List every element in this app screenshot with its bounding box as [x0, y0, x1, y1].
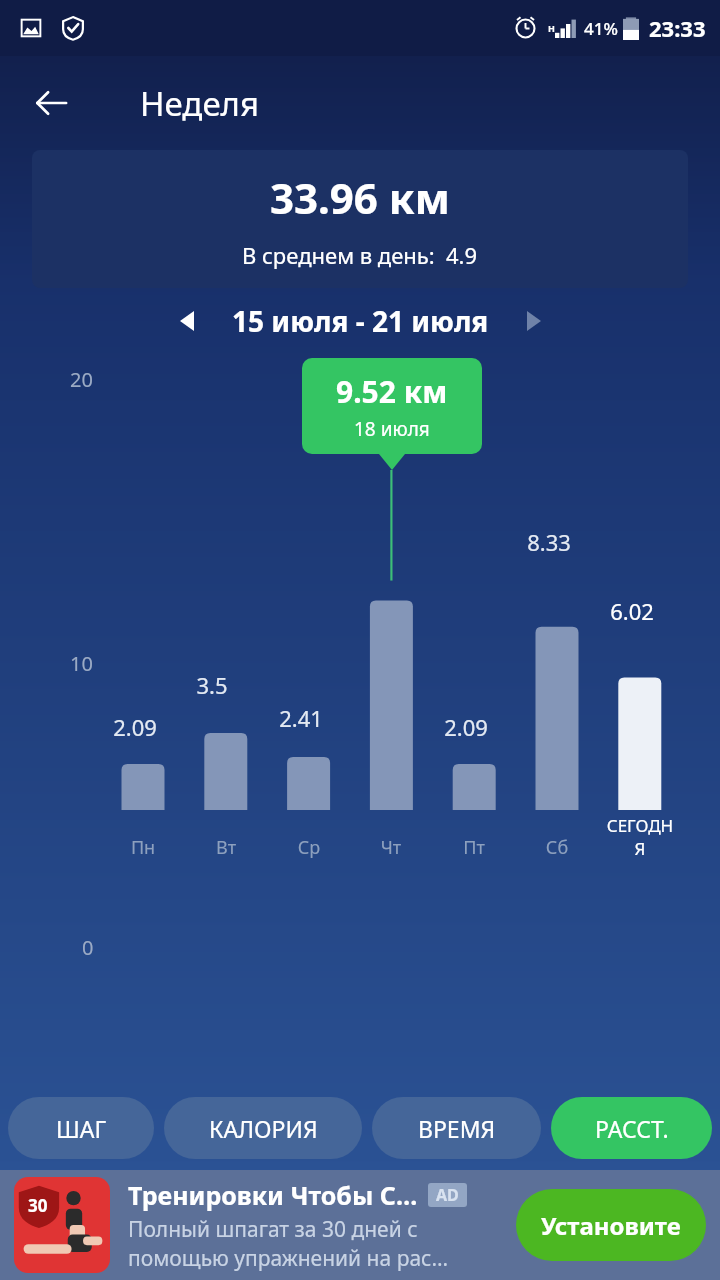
staticText: Вт [190, 835, 262, 860]
staticText: 2.41 [279, 703, 323, 733]
button[interactable]: 30 [0, 1170, 720, 1280]
staticText: СЕГОДНЯ [604, 814, 676, 860]
staticText: 18 июля [354, 416, 430, 442]
staticText: 6.02 [610, 596, 654, 626]
staticText: КАЛОРИЯ [209, 1113, 318, 1144]
staticText: 2.09 [444, 712, 488, 742]
staticText: H [548, 22, 555, 34]
button[interactable]: 9.52 км [302, 358, 482, 454]
staticText: 30 [28, 1194, 48, 1217]
staticText: 9.52 км [336, 371, 448, 412]
staticText: Чт [355, 835, 427, 860]
button[interactable]: КАЛОРИЯ [164, 1097, 362, 1159]
button[interactable]: Установите [516, 1189, 706, 1261]
staticText: 0 [82, 934, 94, 961]
button[interactable]: РАССТ. [551, 1097, 712, 1159]
staticText: AD [436, 1184, 459, 1206]
button[interactable]: ШАГ [8, 1097, 154, 1159]
staticText: Сб [521, 835, 593, 860]
staticText: Полный шпагат за 30 дней с помощью упраж… [128, 1215, 449, 1273]
staticText: 20 [70, 366, 93, 393]
button[interactable]: Back [22, 74, 80, 132]
button[interactable]: Next week [511, 298, 557, 344]
staticText: 33.96 км [270, 169, 450, 226]
staticText: 8.33 [527, 527, 571, 557]
staticText: 23:33 [649, 13, 706, 43]
staticText: Пт [438, 835, 510, 860]
staticText: 2.09 [113, 712, 157, 742]
staticText: 41% [584, 17, 618, 40]
button[interactable]: 33.96 км [32, 150, 688, 288]
staticText: 10 [70, 650, 93, 677]
staticText: РАССТ. [595, 1113, 669, 1144]
staticText: ВРЕМЯ [418, 1113, 496, 1144]
staticText: Неделя [140, 81, 259, 126]
button[interactable]: Previous week [164, 298, 210, 344]
staticText: В среднем в день: 4.9 [242, 240, 478, 270]
staticText: Пн [107, 835, 179, 860]
button[interactable]: 15 июля - 21 июля [232, 302, 489, 340]
staticText: ШАГ [56, 1113, 107, 1144]
button[interactable]: ВРЕМЯ [372, 1097, 541, 1159]
staticText: Установите [541, 1209, 681, 1242]
staticText: Ср [273, 835, 345, 860]
staticText: 3.5 [196, 670, 228, 700]
staticText: Тренировки Чтобы С… [128, 1178, 418, 1212]
